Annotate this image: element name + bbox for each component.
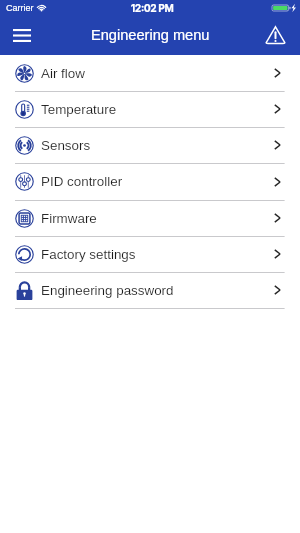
staticText: Air flow	[41, 66, 85, 81]
staticText: 12:02 PM	[131, 2, 174, 14]
button[interactable]: Firmware	[0, 200, 300, 236]
staticText: Temperature	[41, 102, 117, 117]
staticText: Carrier	[6, 3, 34, 13]
button[interactable]: Engineering password	[0, 272, 300, 308]
button[interactable]: Open navigation menu	[0, 16, 44, 54]
staticText: Engineering password	[41, 283, 174, 298]
button[interactable]: Sensors	[0, 127, 300, 163]
button[interactable]: Factory settings	[0, 236, 300, 272]
staticText: Sensors	[41, 138, 91, 153]
button[interactable]: PID controller	[0, 163, 300, 200]
staticText: Firmware	[41, 211, 97, 226]
button[interactable]: Air flow	[0, 55, 300, 91]
button[interactable]: Temperature	[0, 91, 300, 127]
staticText: Engineering menu	[91, 27, 210, 43]
staticText: Factory settings	[41, 247, 136, 262]
staticText: PID controller	[41, 174, 123, 189]
button[interactable]: Warnings	[256, 16, 300, 54]
